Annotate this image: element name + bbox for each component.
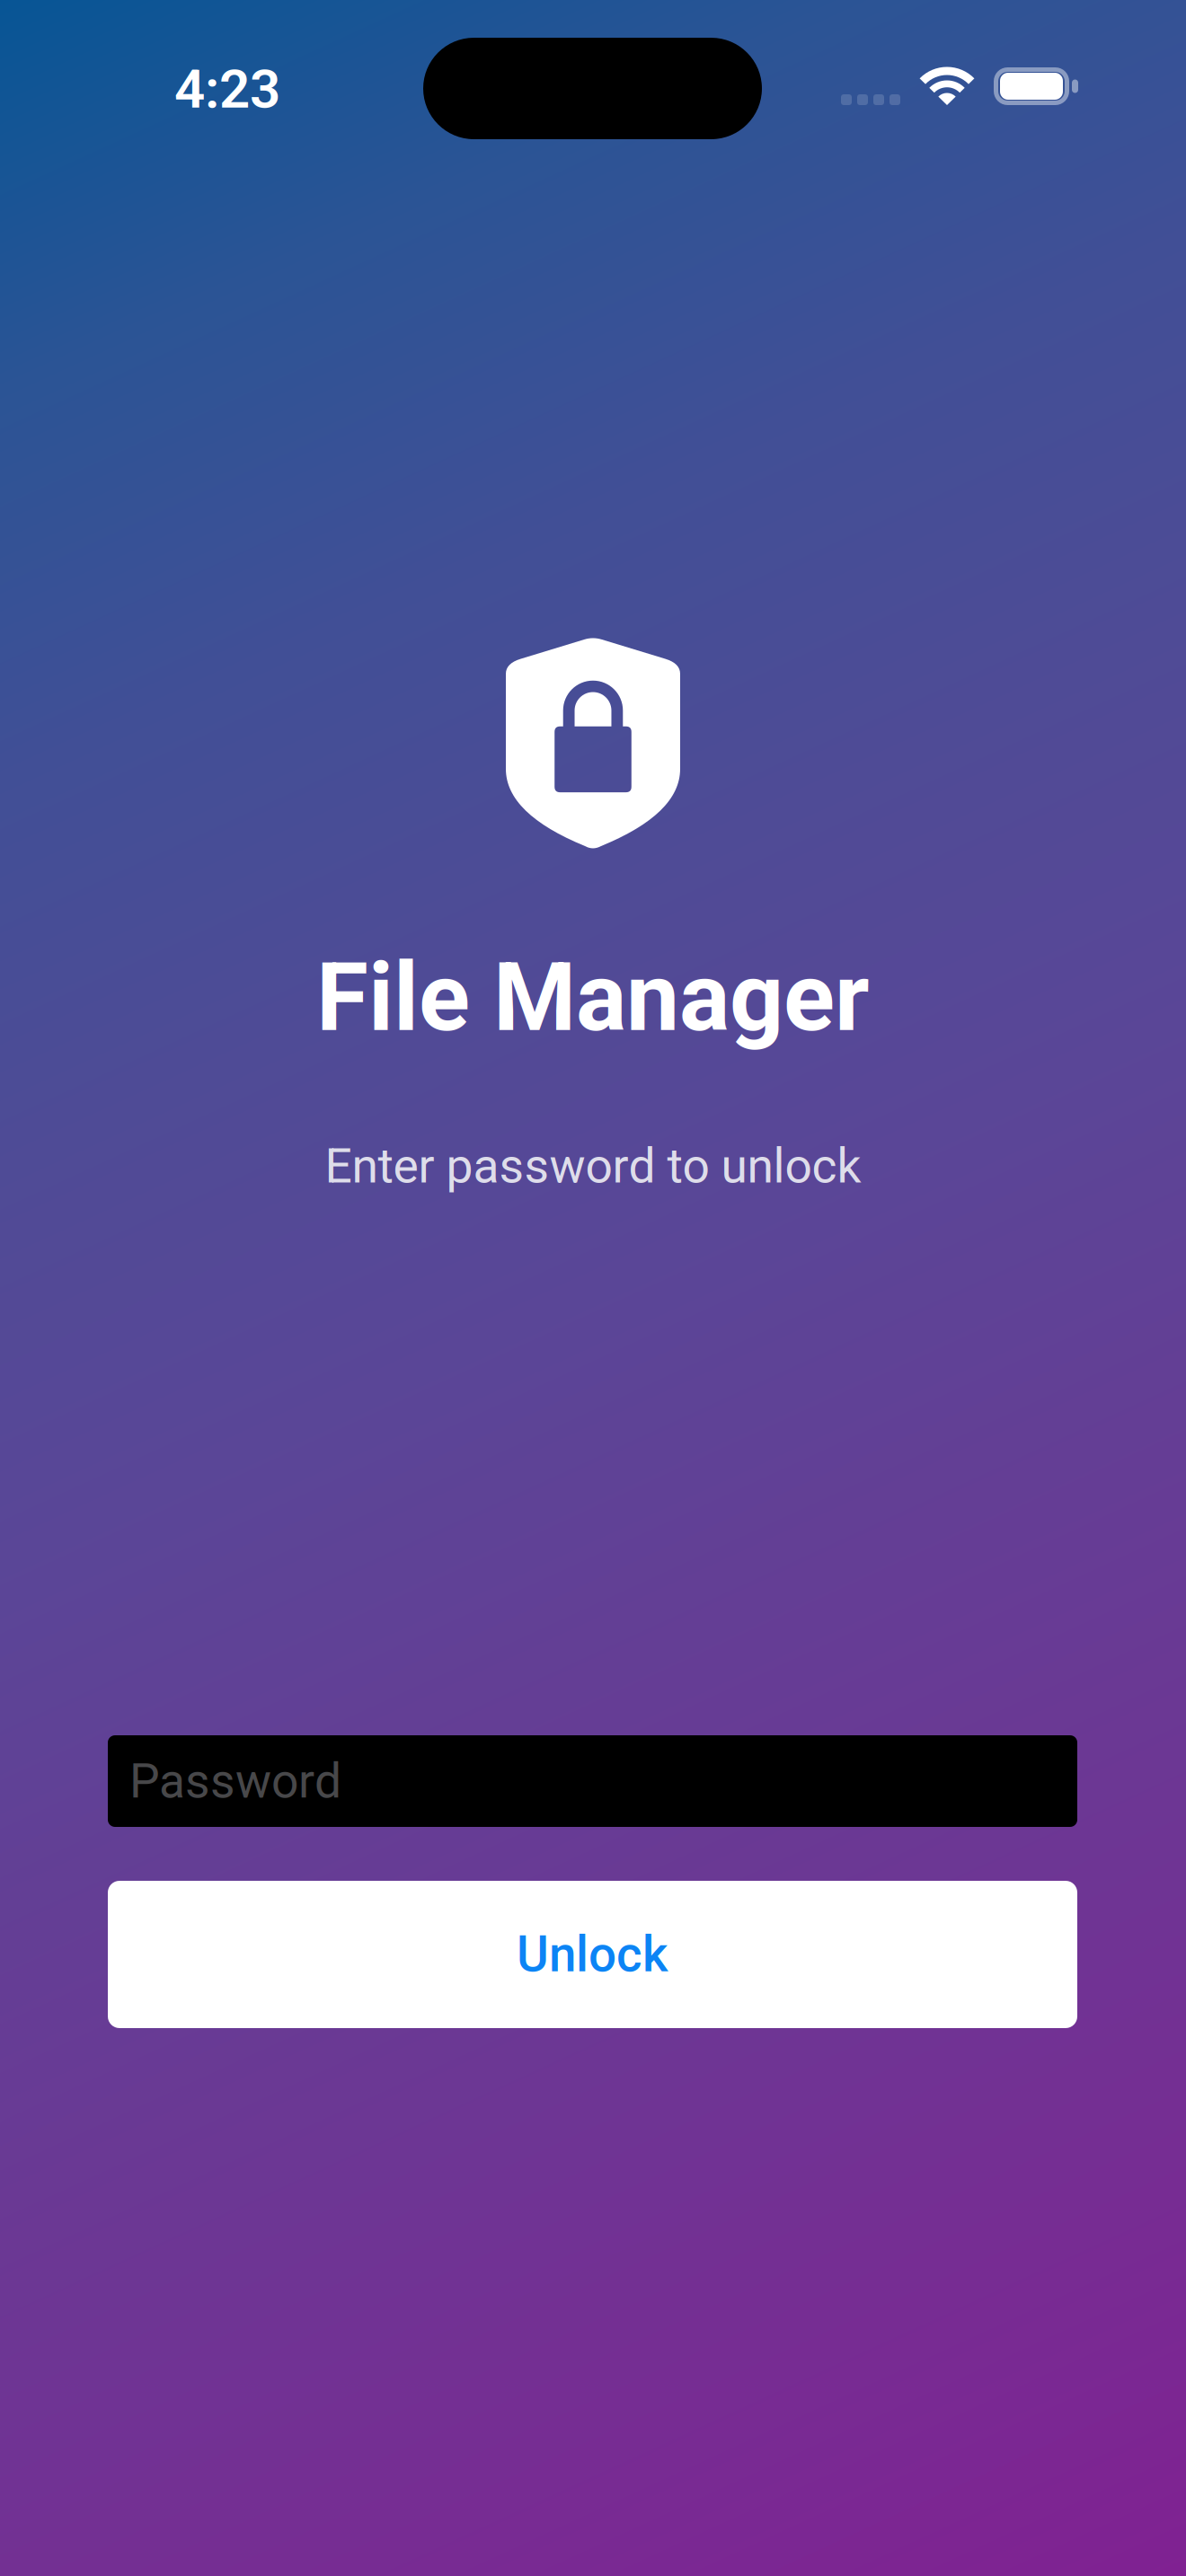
staticText: Enter password to unlock xyxy=(325,1138,861,1194)
button[interactable]: Unlock xyxy=(108,1881,1077,2028)
staticText: Unlock xyxy=(517,1926,668,1983)
staticText: Password xyxy=(129,1753,341,1809)
staticText: File Manager xyxy=(316,942,870,1053)
staticText: 4:23 xyxy=(174,57,280,121)
